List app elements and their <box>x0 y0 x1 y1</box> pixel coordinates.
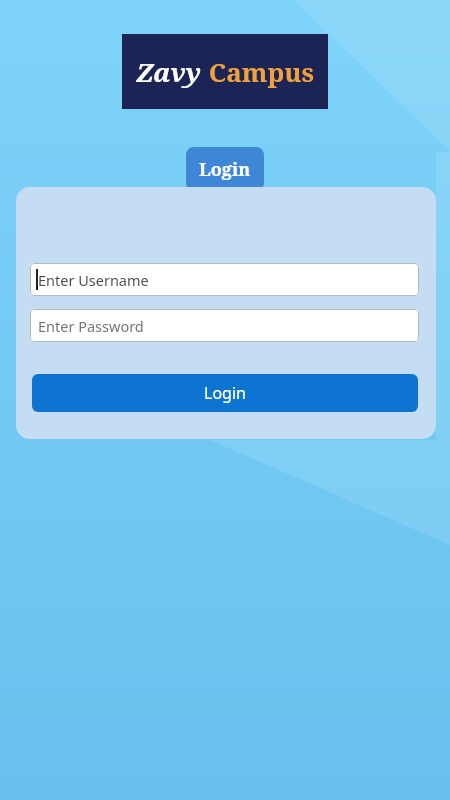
button[interactable]: Login <box>32 374 418 412</box>
staticText: Enter Username <box>38 270 149 290</box>
button[interactable]: Login <box>186 147 264 191</box>
staticText: Zavy <box>136 54 202 89</box>
staticText: Enter Password <box>38 316 144 336</box>
staticText: Campus <box>202 54 315 89</box>
staticText: Login <box>204 382 246 404</box>
button[interactable]: Enter Password <box>30 309 419 342</box>
button[interactable]: Enter Username <box>30 263 419 296</box>
staticText: Login <box>199 157 251 182</box>
